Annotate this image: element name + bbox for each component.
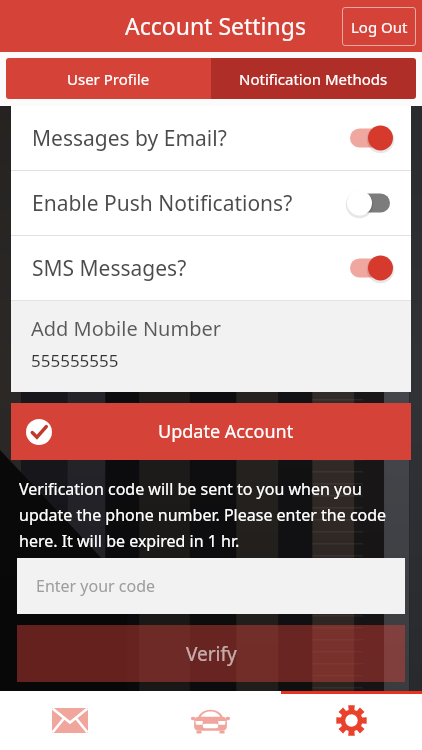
button[interactable]: User Profile: [6, 58, 211, 99]
staticText: Messages by Email?: [32, 124, 347, 153]
button[interactable]: SMS Messages?: [11, 236, 411, 300]
button[interactable]: Messages: [0, 691, 140, 750]
button[interactable]: Settings: [281, 691, 422, 750]
staticText: SMS Messages?: [32, 254, 347, 283]
button[interactable]: Log Out: [342, 7, 416, 46]
staticText: Add Mobile Number: [31, 315, 222, 342]
button[interactable]: Verify: [17, 625, 405, 682]
staticText: 555555555: [31, 349, 119, 372]
staticText: User Profile: [67, 69, 150, 89]
button[interactable]: Add Mobile Number: [11, 301, 411, 392]
staticText: Verify: [186, 641, 237, 667]
staticText: Notification Methods: [239, 69, 388, 89]
staticText: Enable Push Notifications?: [32, 189, 347, 218]
button[interactable]: Notification Methods: [211, 58, 416, 99]
staticText: Verification code will be sent to you wh…: [19, 478, 398, 552]
button[interactable]: Enter your code: [17, 558, 405, 614]
button[interactable]: Update Account: [11, 403, 411, 460]
staticText: Update Account: [158, 419, 294, 444]
staticText: Log Out: [351, 17, 408, 37]
button[interactable]: Enable Push Notifications?: [11, 171, 411, 235]
staticText: Account Settings: [125, 10, 306, 41]
staticText: Enter your code: [36, 575, 156, 597]
button[interactable]: Vehicles: [140, 691, 281, 750]
button[interactable]: Messages by Email?: [11, 106, 411, 170]
